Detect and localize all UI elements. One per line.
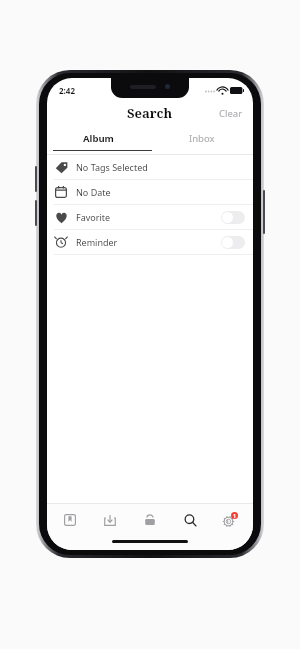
button[interactable]: No Date <box>47 180 253 204</box>
staticText: Inbox <box>189 132 215 145</box>
button[interactable]: Inbox <box>150 126 253 150</box>
staticText: Clear <box>219 107 243 120</box>
button[interactable]: Reminder <box>47 230 253 254</box>
staticText: Favorite <box>76 211 111 223</box>
button[interactable]: Clear <box>209 103 253 124</box>
staticText: 2:42 <box>59 85 75 96</box>
staticText: Search <box>127 104 173 122</box>
staticText: Reminder <box>76 236 118 248</box>
button[interactable]: Favorite toggle <box>221 211 245 224</box>
staticText: No Tags Selected <box>76 161 148 173</box>
button[interactable]: Search <box>173 505 207 535</box>
staticText: 1 <box>233 513 236 519</box>
button[interactable]: Lock <box>133 505 167 535</box>
staticText: No Date <box>76 186 111 198</box>
button[interactable]: Notes <box>53 505 87 535</box>
button[interactable]: Favorite <box>47 205 253 229</box>
button[interactable]: No Tags Selected <box>47 155 253 179</box>
staticText: Album <box>83 132 114 145</box>
button[interactable]: Import <box>93 505 127 535</box>
button[interactable]: Reminder toggle <box>221 236 245 249</box>
button[interactable]: Settings <box>213 505 247 535</box>
button[interactable]: Album <box>47 126 150 150</box>
